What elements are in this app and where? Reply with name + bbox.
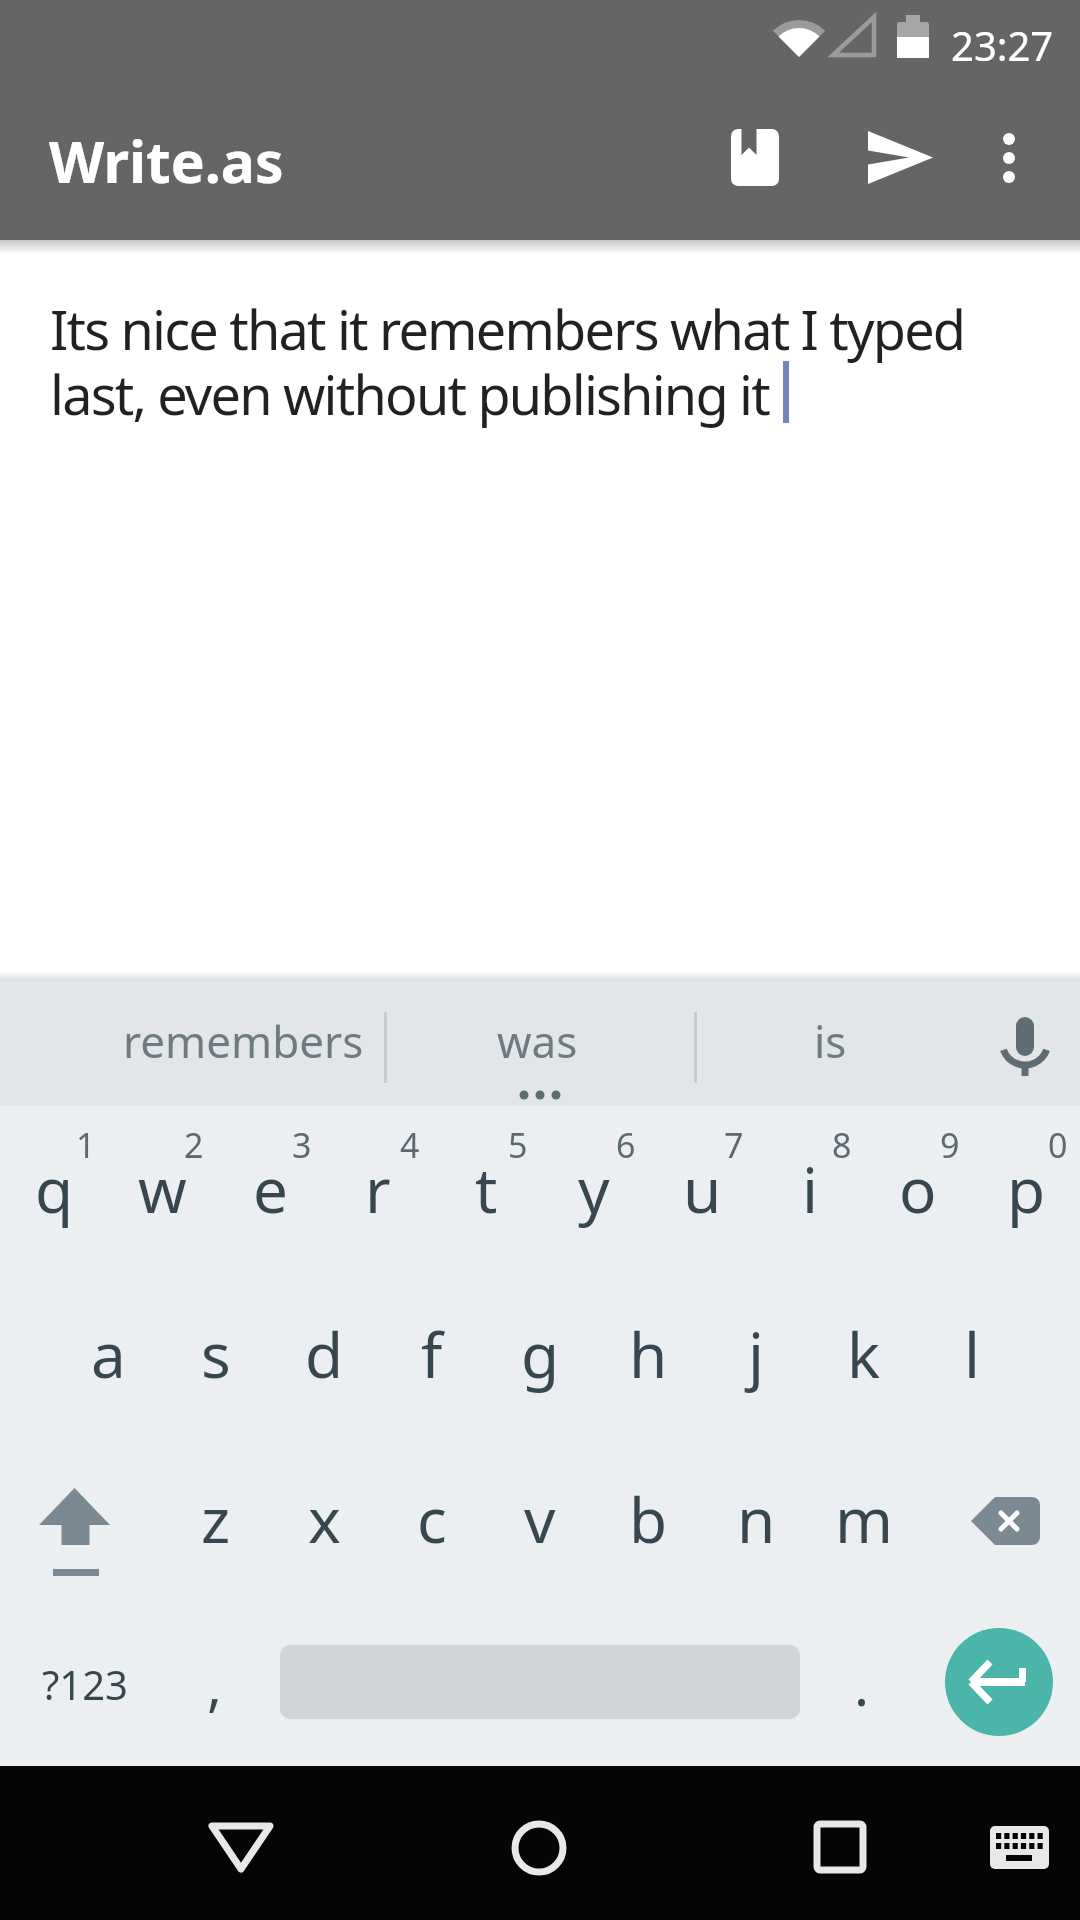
staticText: j — [748, 1312, 764, 1396]
button[interactable]: b — [594, 1436, 702, 1601]
button[interactable]: q — [0, 1106, 108, 1271]
button[interactable] — [918, 1436, 1080, 1601]
staticText: l — [964, 1312, 980, 1396]
staticText: f — [421, 1312, 443, 1396]
button[interactable]: j — [702, 1271, 810, 1436]
button[interactable]: l — [918, 1271, 1026, 1436]
button[interactable]: e — [216, 1106, 324, 1271]
button[interactable]: g — [486, 1271, 594, 1436]
button[interactable] — [945, 1628, 1053, 1736]
staticText: remembers — [123, 1011, 364, 1071]
staticText: 4 — [400, 1122, 420, 1158]
staticText: z — [201, 1477, 231, 1561]
staticText: 1 — [76, 1122, 96, 1158]
staticText: p — [1007, 1147, 1046, 1231]
button[interactable]: f — [378, 1271, 486, 1436]
staticText: q — [35, 1147, 74, 1231]
button[interactable]: z — [162, 1436, 270, 1601]
button[interactable]: p — [972, 1106, 1080, 1271]
button[interactable]: t — [432, 1106, 540, 1271]
staticText: is — [814, 1011, 847, 1071]
staticText: Write.as — [49, 122, 284, 200]
staticText: c — [417, 1477, 447, 1561]
staticText: Its nice that it remembers what I typed … — [50, 292, 965, 431]
staticText: 23:27 — [951, 18, 1054, 72]
staticText: 3 — [292, 1122, 312, 1158]
button[interactable]: c — [378, 1436, 486, 1601]
staticText: 2 — [184, 1122, 204, 1158]
button[interactable] — [852, 109, 948, 205]
button[interactable]: , — [161, 1601, 269, 1766]
staticText: , — [207, 1646, 223, 1722]
button[interactable]: v — [486, 1436, 594, 1601]
staticText: v — [524, 1477, 556, 1561]
staticText: w — [138, 1147, 187, 1231]
staticText: 0 — [1048, 1122, 1068, 1158]
button[interactable]: s — [162, 1271, 270, 1436]
staticText: k — [847, 1312, 881, 1396]
staticText: h — [629, 1312, 668, 1396]
button[interactable]: d — [270, 1271, 378, 1436]
staticText: was — [497, 1011, 578, 1071]
staticText: 5 — [508, 1122, 528, 1158]
button[interactable]: y — [540, 1106, 648, 1271]
button[interactable] — [0, 1436, 162, 1601]
button[interactable]: k — [810, 1271, 918, 1436]
button[interactable]: u — [648, 1106, 756, 1271]
button[interactable]: Its nice that it remembers what I typed … — [50, 292, 1040, 431]
staticText: 8 — [832, 1122, 852, 1158]
staticText: m — [835, 1477, 893, 1561]
staticText: ?123 — [42, 1657, 128, 1711]
staticText: g — [521, 1312, 560, 1396]
staticText: o — [899, 1147, 937, 1231]
staticText: y — [578, 1147, 610, 1231]
button[interactable]: m — [810, 1436, 918, 1601]
button[interactable]: o — [864, 1106, 972, 1271]
button[interactable]: . — [808, 1601, 916, 1766]
button[interactable] — [961, 109, 1057, 205]
button[interactable]: h — [594, 1271, 702, 1436]
staticText: 7 — [724, 1122, 744, 1158]
button[interactable] — [975, 986, 1075, 1096]
staticText: 6 — [616, 1122, 636, 1158]
staticText: . — [854, 1646, 870, 1722]
staticText: n — [737, 1477, 776, 1561]
staticText: s — [201, 1312, 231, 1396]
button[interactable] — [768, 1774, 912, 1912]
staticText: a — [91, 1312, 126, 1396]
button[interactable]: was — [400, 991, 674, 1091]
button[interactable] — [707, 109, 803, 205]
staticText: u — [683, 1147, 722, 1231]
button[interactable]: ?123 — [10, 1601, 160, 1766]
staticText: r — [365, 1147, 391, 1231]
button[interactable]: i — [756, 1106, 864, 1271]
button[interactable] — [467, 1774, 611, 1912]
button[interactable]: n — [702, 1436, 810, 1601]
button[interactable]: w — [108, 1106, 216, 1271]
button[interactable]: remembers — [83, 991, 403, 1091]
staticText: t — [475, 1147, 498, 1231]
button[interactable] — [960, 1790, 1080, 1900]
staticText: d — [305, 1312, 344, 1396]
staticText: b — [629, 1477, 668, 1561]
button[interactable]: x — [270, 1436, 378, 1601]
button[interactable]: is — [700, 991, 960, 1091]
button[interactable] — [168, 1774, 312, 1912]
staticText: i — [802, 1147, 818, 1231]
button[interactable]: r — [324, 1106, 432, 1271]
staticText: 9 — [940, 1122, 960, 1158]
button[interactable]: a — [54, 1271, 162, 1436]
staticText: x — [308, 1477, 341, 1561]
staticText: e — [253, 1147, 288, 1231]
